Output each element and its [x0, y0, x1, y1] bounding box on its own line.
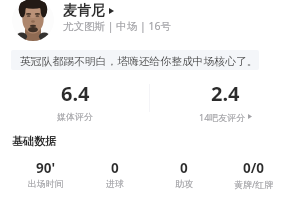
staticText: 0: [180, 159, 188, 177]
staticText: 14吧友评分: [199, 111, 246, 122]
staticText: 进球: [106, 178, 124, 189]
button[interactable]: 2.4: [150, 80, 300, 122]
staticText: 90': [36, 159, 56, 177]
staticText: 基础数据: [12, 134, 56, 148]
staticText: 媒体评分: [57, 111, 93, 122]
button[interactable]: 6.4: [0, 80, 150, 122]
staticText: 出场时间: [28, 178, 64, 189]
button[interactable]: Player photo: [12, 0, 54, 41]
staticText: 6.4: [61, 80, 90, 107]
button[interactable]: 0: [149, 159, 219, 189]
button[interactable]: 英冠队都踢不明白，塔嗨还给你整成中场核心了。: [11, 50, 259, 70]
staticText: 0/0: [243, 159, 265, 177]
staticText: 黄牌/红牌: [234, 178, 274, 190]
button[interactable]: 0/0: [219, 159, 289, 190]
staticText: 助攻: [175, 178, 193, 189]
staticText: 英冠队都踢不明白，塔嗨还给你整成中场核心了。: [20, 55, 258, 69]
staticText: 尤文图斯 | 中场 | 16号: [63, 19, 172, 33]
staticText: 0: [111, 159, 119, 177]
staticText: 2.4: [211, 80, 240, 107]
staticText: 麦肯尼: [63, 2, 105, 20]
button[interactable]: 麦肯尼: [63, 2, 114, 20]
button[interactable]: 0: [80, 159, 149, 189]
button[interactable]: 90': [11, 159, 80, 189]
